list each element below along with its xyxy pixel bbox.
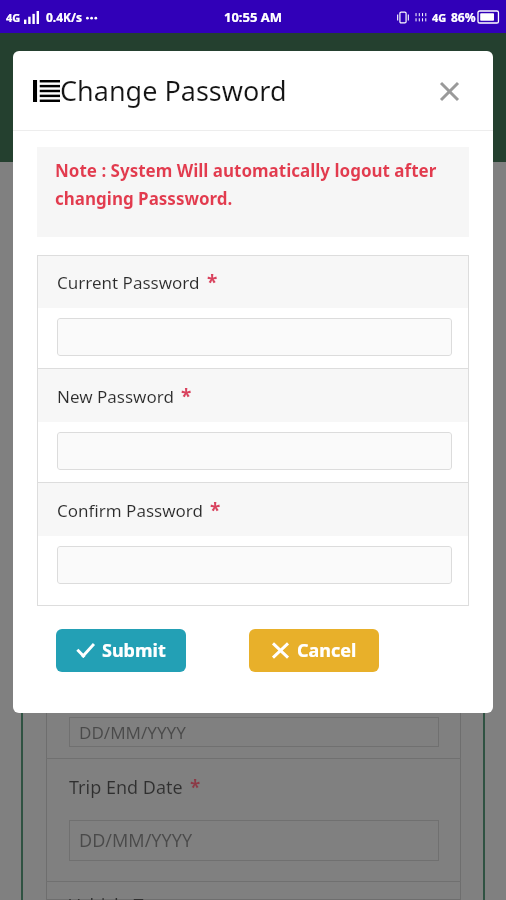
button[interactable]: Cancel [249,629,379,672]
staticText: New Password [57,385,174,408]
staticText: Note : System Will automatically logout … [55,159,451,210]
staticText: 0.4K/s [46,9,83,25]
staticText: Confirm Password [57,499,203,522]
staticText: * [207,269,218,295]
staticText: 86% [451,9,476,25]
button[interactable]: Submit [56,629,186,672]
button[interactable] [57,432,452,470]
staticText: 4G [6,10,21,25]
staticText: DD/MM/YYYY [79,721,186,744]
staticText: Change Password [60,72,287,109]
staticText: * [190,774,201,800]
staticText: Cancel [297,638,357,663]
staticText: 4G [432,10,447,25]
staticText: Submit [102,638,166,663]
staticText: * [210,497,221,523]
staticText: Current Password [57,271,200,294]
staticText: * [181,383,192,409]
button[interactable] [57,546,452,584]
staticText: Trip End Date [69,775,183,800]
button[interactable]: Close [429,71,469,111]
staticText: DD/MM/YYYY [79,828,193,853]
staticText: 10:55 AM [224,8,283,26]
staticText: Vehicle Type [69,893,174,900]
button[interactable] [57,318,452,356]
